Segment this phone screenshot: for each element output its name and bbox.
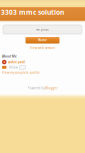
staticText: sachin patil	[8, 60, 25, 64]
staticText: Blogger	[45, 86, 57, 90]
staticText: No posts.	[36, 28, 49, 31]
staticText: About Me	[2, 54, 17, 58]
staticText: View my complete profile	[2, 71, 40, 75]
staticText: View web version	[30, 46, 55, 50]
staticText: Home	[38, 38, 47, 42]
button[interactable]: View my complete profile	[2, 71, 85, 75]
button[interactable]: View web version	[30, 45, 55, 50]
staticText: Follow	[8, 65, 17, 69]
button[interactable]: Home	[25, 37, 59, 43]
staticText: Powered by	[27, 86, 44, 90]
staticText: 3303 mmc solution	[1, 7, 64, 17]
